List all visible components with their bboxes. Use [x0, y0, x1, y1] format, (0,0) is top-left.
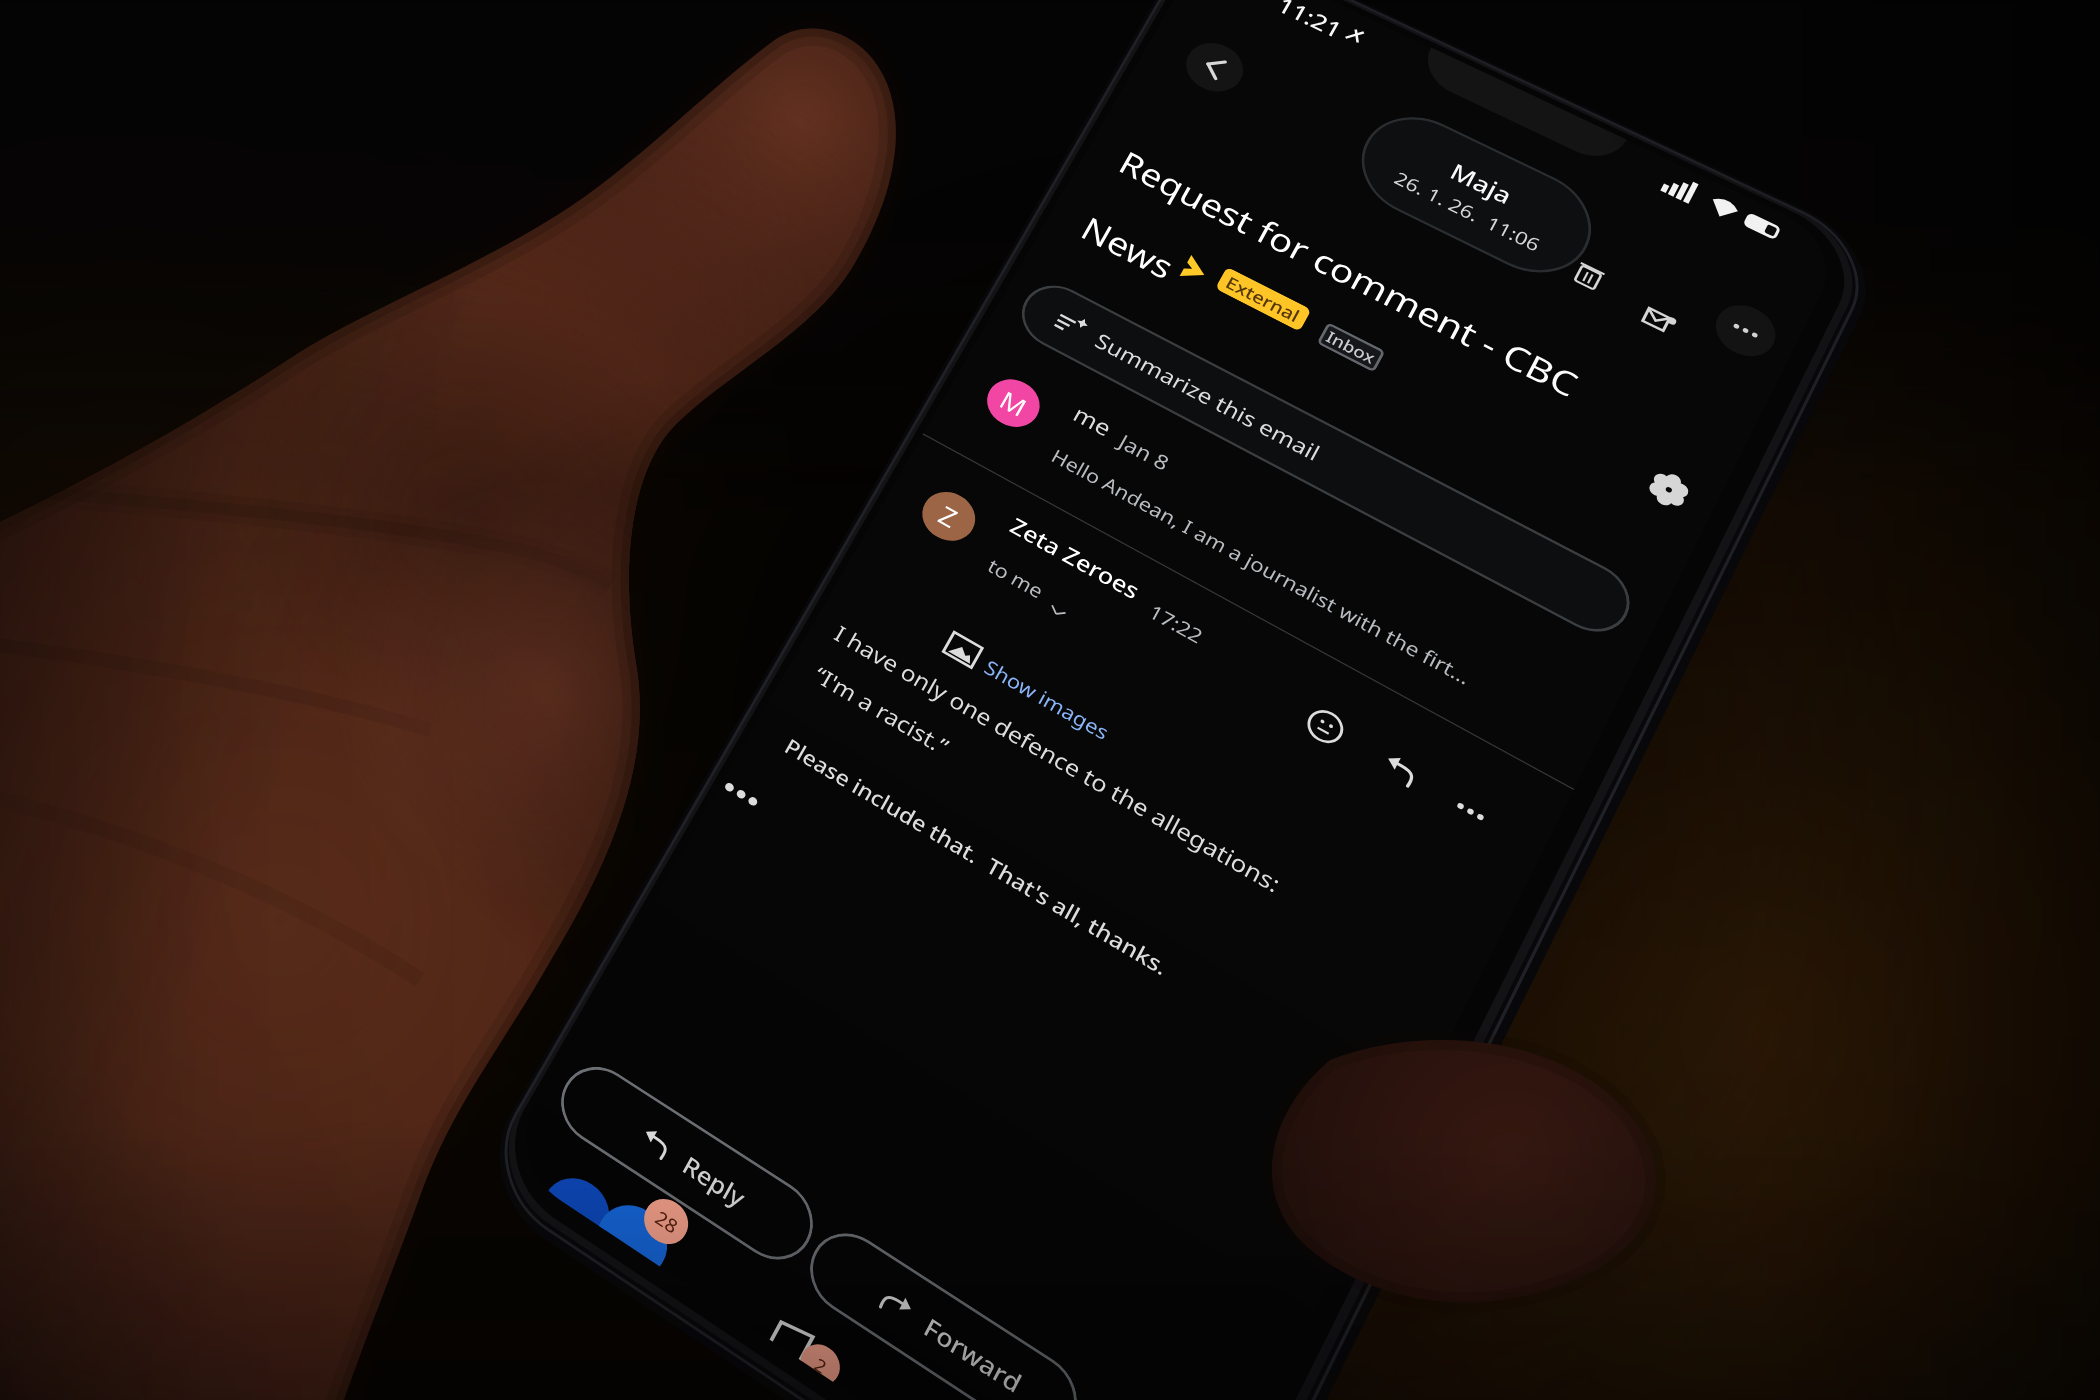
- staticText: News: [1074, 206, 1183, 289]
- staticText: Inbox: [1322, 326, 1380, 369]
- button[interactable]: Inbox: [1316, 322, 1385, 373]
- staticText: Summarize this email: [1090, 327, 1325, 467]
- staticText: “I'm a racist.”: [809, 660, 955, 762]
- staticText: to me: [984, 552, 1048, 604]
- button[interactable]: Forward: [796, 1217, 1091, 1400]
- staticText: External: [1222, 271, 1304, 327]
- button[interactable]: Show images: [976, 650, 1118, 750]
- button[interactable]: Reply: [1369, 739, 1432, 801]
- button[interactable]: External: [1215, 267, 1312, 332]
- button[interactable]: More options: [1707, 296, 1784, 366]
- button[interactable]: Summarize this email: [1010, 274, 1642, 645]
- staticText: Hello Andean, I am a journalist with the…: [1047, 443, 1476, 690]
- staticText: 26. 1. 26. 11:06: [1390, 166, 1544, 256]
- staticText: M: [994, 383, 1034, 425]
- staticText: Zeta Zeroes: [1005, 510, 1146, 606]
- button[interactable]: Delete: [1555, 245, 1623, 307]
- staticText: Reply: [677, 1148, 751, 1215]
- staticText: 17:22: [1145, 598, 1208, 649]
- staticText: Jan 8: [1114, 428, 1174, 477]
- button[interactable]: Mark unread: [1625, 289, 1694, 352]
- button[interactable]: Back: [1177, 34, 1252, 101]
- button[interactable]: More: [1438, 780, 1502, 843]
- staticText: 2: [813, 1352, 831, 1375]
- staticText: Forward: [918, 1310, 1028, 1400]
- staticText: Maja: [1445, 156, 1518, 212]
- button[interactable]: Reply: [547, 1052, 827, 1276]
- staticText: I have only one defence to the allegatio…: [829, 619, 1286, 900]
- staticText: 11:21: [1272, 0, 1348, 45]
- button[interactable]: Star: [1637, 461, 1700, 519]
- staticText: Z: [933, 498, 964, 536]
- staticText: 28: [651, 1204, 683, 1239]
- staticText: Please include that. That's all, thanks.: [780, 732, 1174, 983]
- staticText: Show images: [980, 654, 1115, 746]
- staticText: Request for comment - CBC: [1112, 141, 1586, 407]
- staticText: me: [1068, 399, 1117, 444]
- button[interactable]: React: [1294, 696, 1357, 757]
